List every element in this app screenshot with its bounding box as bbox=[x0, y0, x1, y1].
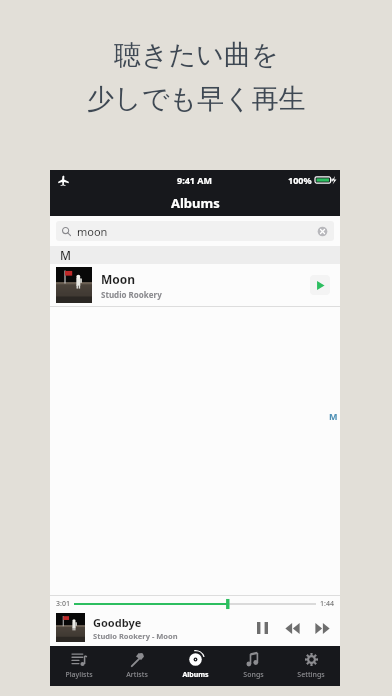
button[interactable]: Albums bbox=[166, 646, 224, 686]
button[interactable]: Moon bbox=[50, 264, 340, 306]
button[interactable]: Previous track bbox=[280, 616, 304, 640]
staticText: Goodbye bbox=[93, 615, 142, 630]
button[interactable]: moon bbox=[56, 221, 334, 241]
button[interactable]: Next track bbox=[310, 616, 334, 640]
staticText: 少しでも早く再生 bbox=[87, 82, 306, 116]
staticText: 9:41 AM bbox=[177, 174, 213, 186]
staticText: 1:44 bbox=[320, 599, 334, 609]
button[interactable]: Clear search bbox=[317, 226, 328, 237]
staticText: Studio Rookery - Moon bbox=[93, 631, 178, 641]
staticText: Studio Rookery bbox=[101, 289, 162, 300]
staticText: M bbox=[60, 247, 72, 263]
staticText: Playlists bbox=[65, 670, 93, 680]
button[interactable]: Songs bbox=[224, 646, 282, 686]
staticText: Songs bbox=[243, 670, 264, 680]
staticText: M bbox=[329, 410, 338, 422]
button[interactable]: Settings bbox=[282, 646, 340, 686]
staticText: Moon bbox=[101, 271, 136, 287]
button[interactable]: Pause bbox=[250, 616, 274, 640]
button[interactable] bbox=[74, 598, 316, 610]
button[interactable]: Play Moon bbox=[310, 275, 330, 295]
staticText: 聴きたい曲を bbox=[114, 38, 279, 72]
staticText: 3:01 bbox=[56, 599, 70, 609]
staticText: Albums bbox=[182, 670, 209, 680]
staticText: moon bbox=[77, 224, 108, 239]
staticText: Settings bbox=[297, 670, 325, 680]
staticText: Albums bbox=[171, 194, 220, 212]
button[interactable]: Artists bbox=[108, 646, 166, 686]
staticText: Artists bbox=[126, 670, 148, 680]
button[interactable]: Playlists bbox=[50, 646, 108, 686]
staticText: 100% bbox=[288, 174, 312, 186]
